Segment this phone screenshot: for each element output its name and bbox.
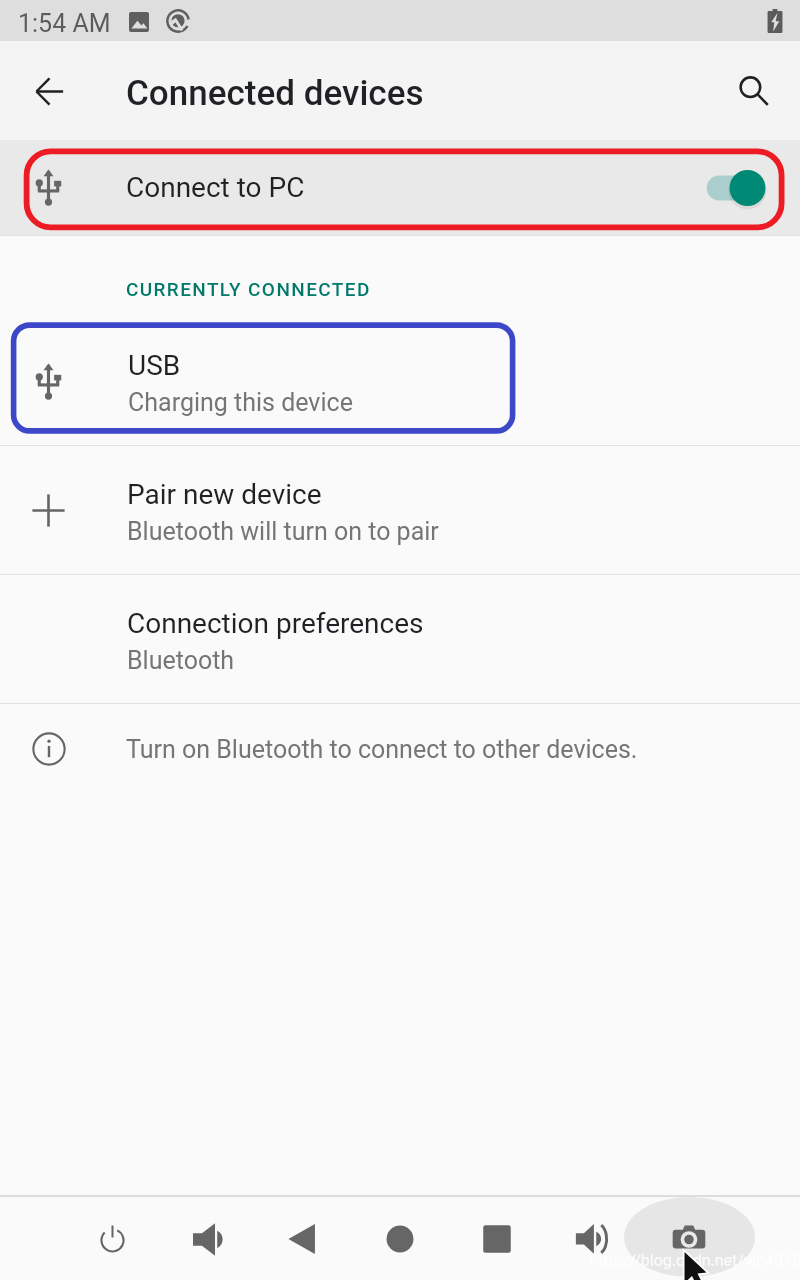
staticText: 1:54 AM (18, 9, 111, 38)
button[interactable]: Screenshot (661, 1211, 717, 1267)
staticText: USB (128, 349, 181, 382)
button[interactable]: Connection preferences (0, 575, 800, 703)
staticText: Bluetooth will turn on to pair (127, 517, 439, 546)
button[interactable]: Home (372, 1211, 428, 1267)
button[interactable]: Navigate up (21, 63, 77, 119)
staticText: https://blog.csdn.net/wb4916 (589, 1251, 800, 1270)
staticText: Turn on Bluetooth to connect to other de… (126, 735, 638, 764)
staticText: Bluetooth (127, 646, 235, 675)
button[interactable]: Volume up (563, 1211, 619, 1267)
button[interactable]: Connect to PC (0, 140, 800, 235)
button[interactable]: USB (0, 317, 800, 445)
button[interactable]: Pair new device (0, 446, 800, 574)
button[interactable]: Recents (469, 1211, 525, 1267)
button[interactable]: Search (725, 63, 781, 119)
staticText: Pair new device (127, 478, 322, 511)
staticText: Connect to PC (126, 171, 305, 204)
staticText: Connected devices (126, 73, 424, 114)
staticText: CURRENTLY CONNECTED (126, 278, 371, 300)
button[interactable]: Connect to PC toggle (706, 156, 782, 220)
button[interactable]: Back (274, 1211, 330, 1267)
button[interactable]: Volume down (180, 1211, 236, 1267)
staticText: Charging this device (128, 388, 353, 417)
button[interactable]: Power (84, 1211, 140, 1267)
staticText: Connection preferences (127, 607, 424, 640)
